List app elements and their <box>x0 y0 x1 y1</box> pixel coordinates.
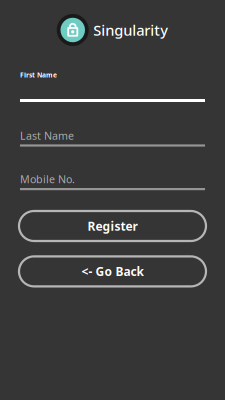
staticText: Last Name <box>20 128 74 143</box>
staticText: Mobile No. <box>20 172 75 186</box>
staticText: First Name <box>20 71 57 79</box>
button[interactable]: <- Go Back <box>19 256 206 286</box>
button[interactable]: Register <box>19 211 206 241</box>
staticText: <- Go Back <box>81 263 143 279</box>
button[interactable]: First Name <box>20 71 205 102</box>
button[interactable]: Mobile No. <box>20 174 205 190</box>
staticText: Singularity <box>93 20 168 40</box>
staticText: Register <box>87 218 137 234</box>
button[interactable]: Last Name <box>20 130 205 147</box>
